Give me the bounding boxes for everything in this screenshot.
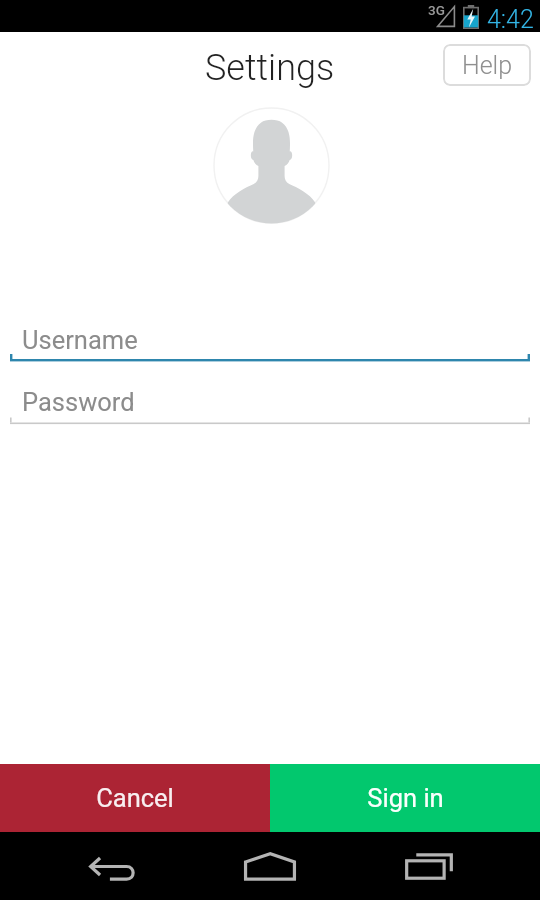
button[interactable]: Home <box>229 832 311 900</box>
button[interactable]: Back <box>72 832 153 900</box>
staticText: Password <box>22 387 135 417</box>
button[interactable]: Password <box>10 387 530 431</box>
button[interactable]: Cancel <box>0 764 270 832</box>
button[interactable]: Help <box>443 44 531 86</box>
staticText: Sign in <box>367 783 444 813</box>
staticText: Help <box>462 51 513 80</box>
staticText: Cancel <box>96 783 174 813</box>
staticText: 4:42 <box>487 5 534 34</box>
staticText: Settings <box>205 47 335 89</box>
button[interactable]: Username <box>10 322 530 366</box>
button[interactable]: Sign in <box>270 764 540 832</box>
button[interactable]: Recents <box>388 832 469 900</box>
staticText: 3G <box>428 2 445 18</box>
staticText: Username <box>22 325 138 355</box>
